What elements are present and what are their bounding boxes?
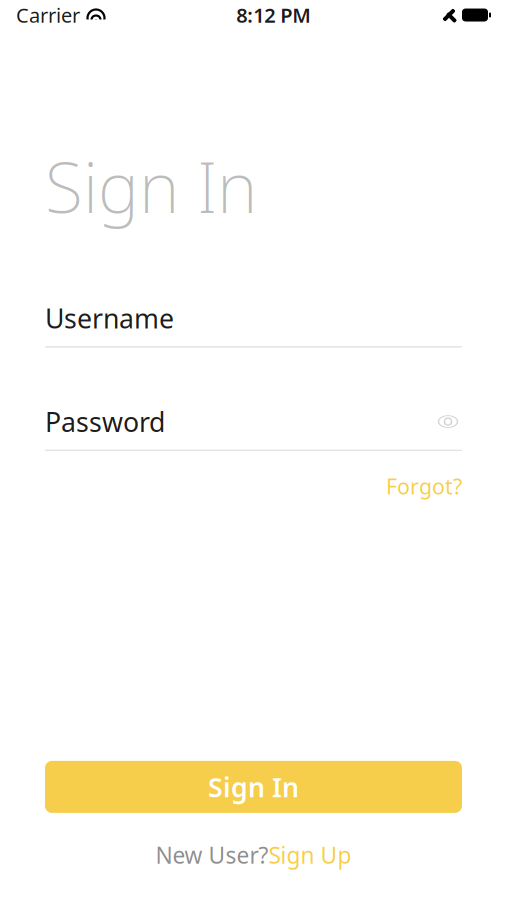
staticText: Forgot? [386, 472, 462, 500]
staticText: Password [45, 404, 165, 439]
button[interactable]: Show password [434, 412, 462, 432]
staticText: Sign In [45, 140, 257, 232]
staticText: Sign Up [268, 840, 351, 870]
staticText: 8:12 PM [236, 2, 311, 28]
staticText: New User? [155, 840, 268, 870]
staticText: Carrier [16, 2, 80, 28]
button[interactable]: Forgot? [386, 466, 462, 506]
button[interactable]: Sign In [45, 761, 462, 813]
button[interactable]: New User? [45, 832, 462, 878]
staticText: Username [45, 300, 174, 336]
staticText: Sign In [208, 769, 299, 805]
